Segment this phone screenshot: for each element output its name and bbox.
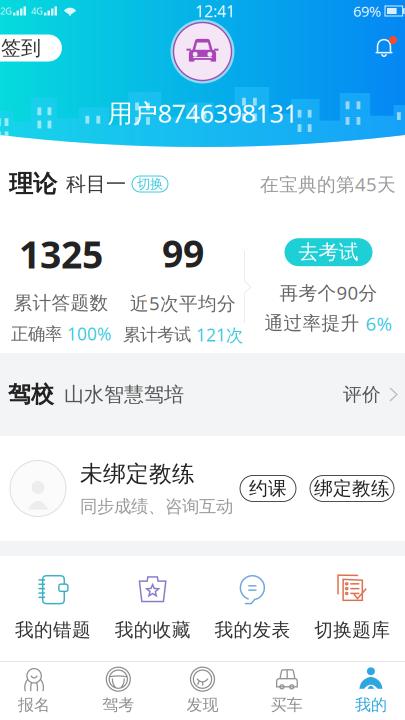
staticText: 121次 — [196, 323, 243, 346]
button[interactable]: 约课 — [240, 475, 296, 501]
staticText: 累计答题数 — [13, 291, 108, 314]
button[interactable]: 报名 — [0, 662, 76, 720]
staticText: 切换题库 — [314, 618, 390, 641]
staticText: 12:41 — [195, 0, 235, 22]
staticText: 山水智慧驾培 — [64, 382, 184, 407]
button[interactable]: 我的收藏 — [103, 556, 203, 660]
staticText: 理论 — [9, 169, 57, 199]
staticText: 切换 — [137, 176, 163, 192]
staticText: 我的 — [355, 695, 387, 715]
staticText: 未绑定教练 — [80, 460, 195, 488]
button[interactable]: Profile — [170, 19, 234, 83]
staticText: 去考试 — [298, 240, 358, 264]
button[interactable]: 我的发表 — [202, 556, 302, 660]
staticText: 科目一 — [66, 172, 126, 196]
button[interactable]: 切换 — [132, 176, 168, 192]
staticText: 绑定教练 — [314, 477, 390, 500]
button[interactable]: 买车 — [245, 662, 329, 720]
staticText: 近5次平均分 — [130, 290, 236, 315]
staticText: 报名 — [18, 695, 50, 715]
staticText: 我的发表 — [214, 618, 290, 641]
staticText: 累计考试 — [123, 324, 196, 345]
staticText: 同步成绩、咨询互动 — [80, 496, 233, 517]
staticText: 再考个90分 — [279, 280, 377, 305]
staticText: 正确率 — [11, 323, 67, 344]
button[interactable]: 去考试 — [284, 238, 372, 266]
staticText: 我的收藏 — [115, 618, 191, 641]
staticText: 99 — [162, 228, 204, 278]
staticText: 用户8746398131 — [107, 96, 297, 130]
button[interactable]: Notifications — [369, 33, 399, 63]
button[interactable]: 签到 — [0, 34, 62, 61]
staticText: 1325 — [19, 229, 103, 279]
staticText: 发现 — [186, 695, 218, 715]
staticText: 69% — [353, 1, 381, 21]
staticText: 2G — [0, 5, 12, 17]
staticText: 驾校 — [8, 380, 54, 409]
staticText: 6% — [365, 311, 392, 336]
staticText: 评价 — [343, 383, 381, 406]
button[interactable]: 绑定教练 — [310, 475, 394, 501]
staticText: 100% — [67, 322, 111, 345]
button[interactable]: 我的错题 — [3, 556, 103, 660]
staticText: 在宝典的第45天 — [260, 172, 396, 196]
staticText: 签到 — [1, 36, 41, 60]
staticText: 4G — [31, 5, 43, 17]
button[interactable]: 驾校 — [0, 353, 405, 436]
staticText: 我的错题 — [15, 618, 91, 641]
button[interactable]: 驾考 — [76, 662, 160, 720]
staticText: 买车 — [271, 695, 303, 715]
staticText: 约课 — [249, 477, 287, 500]
button[interactable]: 我的 — [329, 662, 405, 720]
button[interactable]: 切换题库 — [302, 556, 402, 660]
button[interactable]: 发现 — [160, 662, 245, 720]
staticText: 通过率提升 — [264, 312, 365, 335]
staticText: 驾考 — [102, 695, 134, 715]
